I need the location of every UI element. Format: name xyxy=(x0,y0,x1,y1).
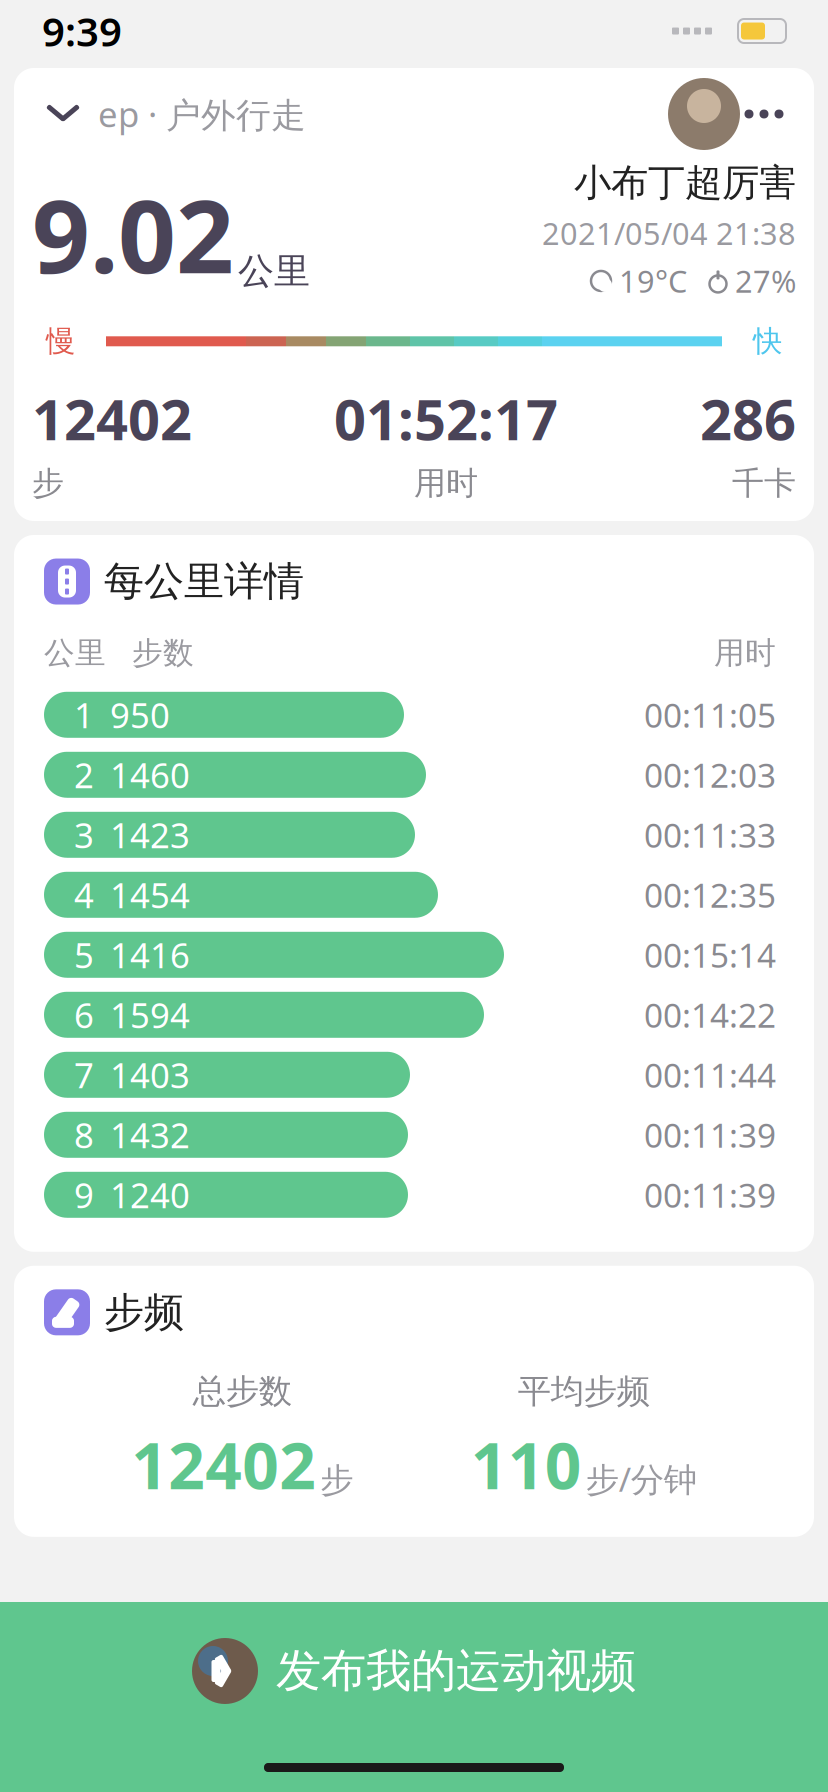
staticText: 1460 xyxy=(110,752,190,798)
staticText: 1454 xyxy=(110,872,190,918)
staticText: 9.02 xyxy=(32,167,234,301)
staticText: 00:11:44 xyxy=(644,1053,776,1097)
staticText: 9:39 xyxy=(42,4,122,57)
staticText: 总步数 xyxy=(193,1371,292,1412)
staticText: 1594 xyxy=(110,992,190,1038)
staticText: 步 xyxy=(32,464,64,503)
staticText: 00:11:39 xyxy=(644,1173,776,1217)
button[interactable]: Share xyxy=(668,82,732,146)
staticText: 步 xyxy=(320,1460,353,1501)
staticText: 1423 xyxy=(110,812,190,858)
staticText: 00:11:39 xyxy=(644,1113,776,1157)
staticText: 1 xyxy=(74,692,94,738)
staticText: 00:14:22 xyxy=(644,993,776,1037)
staticText: 5 xyxy=(74,932,94,978)
button[interactable]: Collapse xyxy=(32,83,94,145)
staticText: ep · 户外行走 xyxy=(98,91,306,137)
staticText: 110 xyxy=(471,1422,582,1507)
staticText: 步频 xyxy=(104,1288,184,1337)
staticText: 00:11:05 xyxy=(644,693,776,737)
staticText: 00:11:33 xyxy=(644,813,776,857)
staticText: 6 xyxy=(74,992,94,1038)
staticText: 00:12:35 xyxy=(644,873,776,917)
staticText: 3 xyxy=(74,812,94,858)
staticText: 1432 xyxy=(110,1112,190,1158)
staticText: 27% xyxy=(735,261,796,301)
staticText: 平均步频 xyxy=(518,1371,650,1412)
staticText: 公里 xyxy=(238,249,310,293)
staticText: 4 xyxy=(74,872,94,918)
staticText: 1403 xyxy=(110,1052,190,1098)
staticText: 01:52:17 xyxy=(334,381,558,456)
staticText: 公里 xyxy=(44,634,106,672)
staticText: 步/分钟 xyxy=(586,1457,697,1501)
staticText: 286 xyxy=(700,381,796,456)
staticText: 发布我的运动视频 xyxy=(276,1643,636,1699)
staticText: 2 xyxy=(74,752,94,798)
staticText: 950 xyxy=(110,692,170,738)
staticText: 12402 xyxy=(131,1422,316,1507)
staticText: 慢 xyxy=(46,323,75,359)
staticText: 12402 xyxy=(32,381,192,456)
staticText: 千卡 xyxy=(732,464,796,503)
staticText: 1416 xyxy=(110,932,190,978)
staticText: 步数 xyxy=(132,634,194,672)
staticText: 快 xyxy=(753,323,782,359)
staticText: 1240 xyxy=(110,1172,190,1218)
staticText: 每公里详情 xyxy=(104,557,304,606)
staticText: 8 xyxy=(74,1112,94,1158)
staticText: 用时 xyxy=(714,634,776,672)
staticText: 7 xyxy=(74,1052,94,1098)
staticText: 00:12:03 xyxy=(644,753,776,797)
staticText: 19°C xyxy=(619,261,687,301)
staticText: 小布丁超厉害 xyxy=(574,160,796,206)
staticText: 2021/05/04 21:38 xyxy=(542,213,796,254)
button[interactable]: More options xyxy=(732,82,796,146)
button[interactable]: 发布我的运动视频 xyxy=(0,1602,828,1792)
staticText: 9 xyxy=(74,1172,94,1218)
staticText: 00:15:14 xyxy=(644,933,776,977)
staticText: 用时 xyxy=(414,464,478,503)
